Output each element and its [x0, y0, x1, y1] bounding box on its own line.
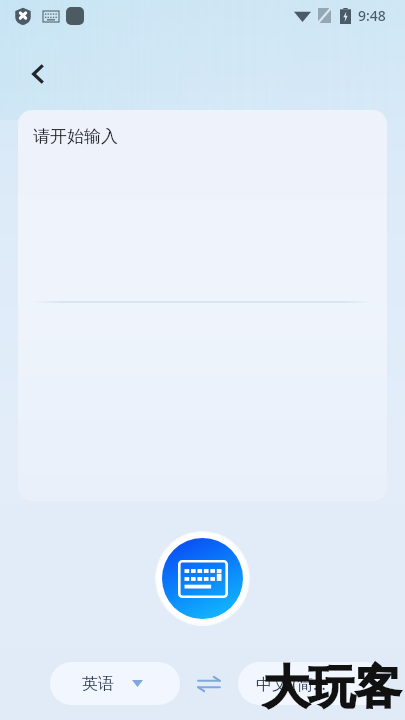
- staticText: 英语: [82, 674, 114, 694]
- staticText: 中文 (简...: [256, 673, 326, 695]
- staticText: 请开始输入: [33, 126, 118, 147]
- button[interactable]: 请开始输入: [18, 110, 387, 501]
- button[interactable]: 英语: [50, 662, 180, 705]
- button[interactable]: Swap languages: [192, 667, 226, 701]
- staticText: 9:48: [358, 6, 386, 25]
- button[interactable]: Open keyboard: [155, 531, 250, 626]
- staticText: 大玩客: [263, 659, 401, 717]
- button[interactable]: 中文 (简...: [238, 662, 386, 705]
- button[interactable]: Back: [14, 50, 62, 98]
